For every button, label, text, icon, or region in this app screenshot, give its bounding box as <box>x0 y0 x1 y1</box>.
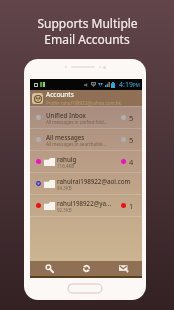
button[interactable]: Unified Inbox <box>30 107 142 128</box>
staticText: 4 <box>129 157 134 167</box>
staticText: Supports Multiple <box>37 15 138 31</box>
button[interactable]: Accounts <box>30 90 142 106</box>
staticText: PM <box>133 82 140 88</box>
staticText: All messages in unified fold... <box>46 119 108 125</box>
staticText: 92.3KB <box>57 207 72 213</box>
button[interactable]: Search <box>30 261 68 276</box>
staticText: 4:19 <box>119 80 133 90</box>
staticText: 5 <box>129 135 134 145</box>
button[interactable]: Refresh <box>68 261 105 276</box>
staticText: 84.3KB <box>57 185 72 191</box>
button[interactable]: rahulrai198922@aol.com <box>30 173 142 194</box>
button[interactable]: rahul198922@ya... <box>30 195 142 216</box>
staticText: 5 <box>129 113 134 123</box>
staticText: rahul198922@ya... <box>57 199 112 207</box>
button[interactable]: rahulg <box>30 151 142 172</box>
staticText: 1 <box>129 201 134 211</box>
button[interactable]: All messages <box>30 129 142 150</box>
staticText: 116.4KB <box>57 163 75 169</box>
staticText: rahulg <box>57 155 77 163</box>
staticText: Accounts <box>46 90 74 99</box>
button[interactable]: Compose mail <box>105 261 142 276</box>
staticText: rahulrai198922@aol.com <box>57 177 131 185</box>
staticText: Email Accounts <box>44 31 130 47</box>
staticText: All messages in searchable... <box>46 141 107 147</box>
staticText: Profile rahul198922@yahoo.com.hk <box>46 100 122 106</box>
staticText: All messages <box>46 133 85 141</box>
staticText: Unified Inbox <box>46 111 86 119</box>
